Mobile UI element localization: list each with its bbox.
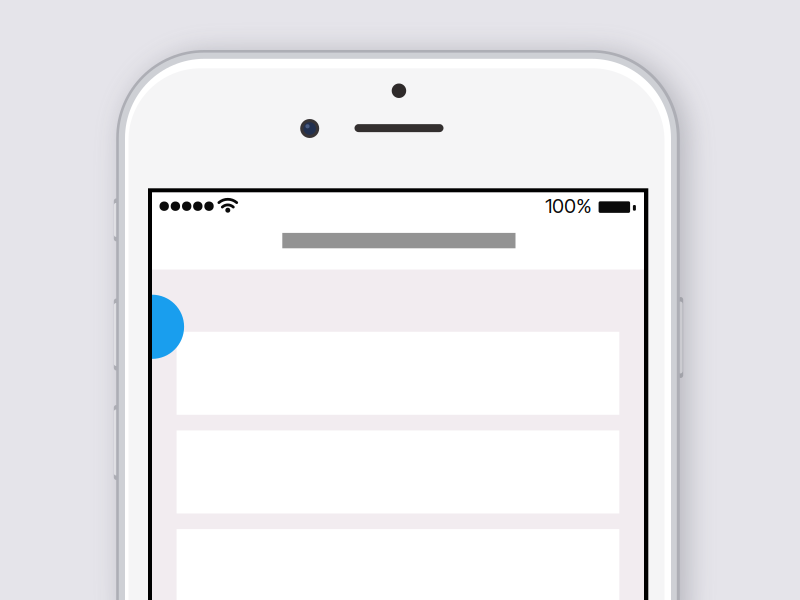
button[interactable]: List item 1: [177, 332, 619, 415]
button[interactable]: Title: [282, 233, 515, 248]
button[interactable]: Profile: [120, 295, 184, 359]
staticText: 100%: [545, 194, 591, 218]
